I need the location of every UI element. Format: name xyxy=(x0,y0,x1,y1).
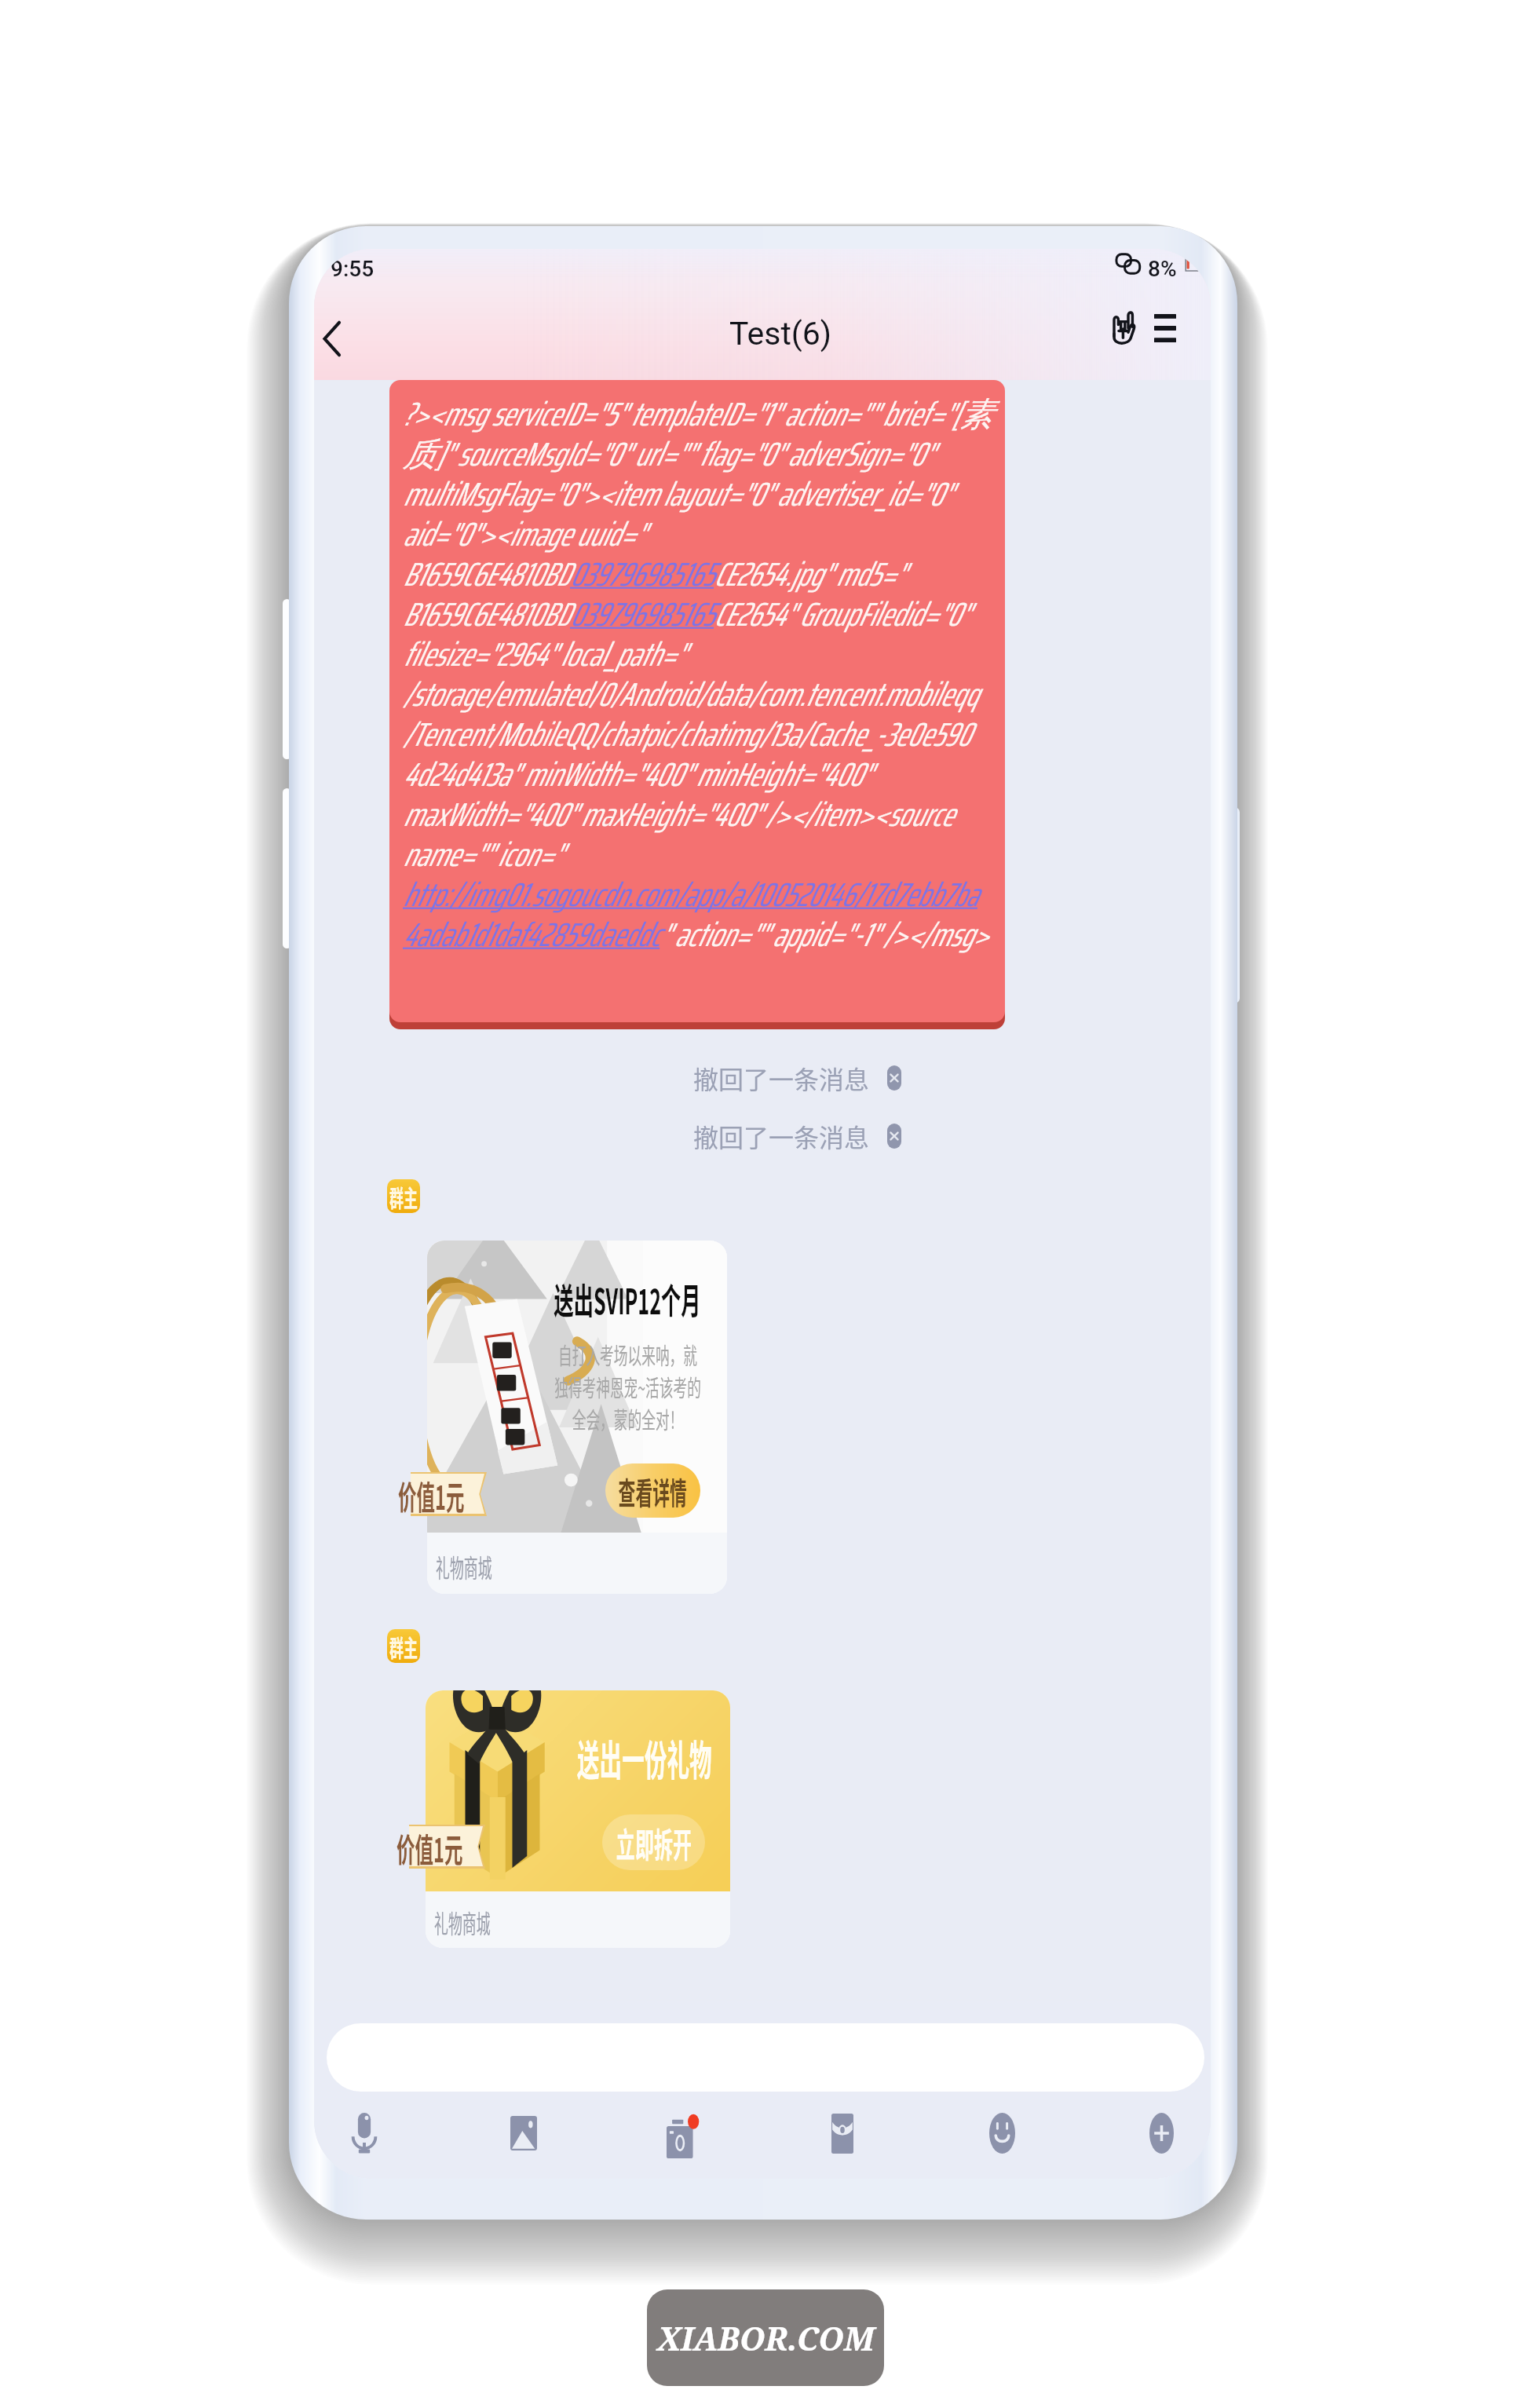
staticText: 9:55 xyxy=(331,256,375,282)
staticText: B1659C6E4810BD xyxy=(403,588,570,640)
staticText: 4adab1d1daf42859daeddc xyxy=(403,908,660,960)
button[interactable]: More xyxy=(1122,2094,1200,2172)
staticText: 送出一份礼物 xyxy=(577,1728,712,1789)
staticText: multiMsgFlag="0"><item layout="0" advert… xyxy=(403,468,952,520)
button[interactable]: Back xyxy=(314,305,364,371)
staticText: aid="0"><image uuid=" xyxy=(403,508,644,560)
staticText: ?><msg serviceID="5" templateID="1" acti… xyxy=(403,388,992,440)
staticText: 查看详情 xyxy=(618,1469,687,1513)
staticText: 8% xyxy=(1148,256,1177,282)
staticText: 039796985165 xyxy=(570,588,714,640)
button[interactable]: 送出一份礼物 xyxy=(426,1690,730,1948)
button[interactable]: Emoji xyxy=(963,2094,1041,2172)
staticText: 质]" sourceMsgId="0" url="" flag="0" adve… xyxy=(403,428,933,480)
staticText: filesize="2964" local_path=" xyxy=(403,628,685,680)
staticText: 撤回了一条消息 xyxy=(693,1060,870,1096)
button[interactable]: Menu xyxy=(1140,303,1190,353)
staticText: XIABOR.COM xyxy=(657,2316,875,2360)
staticText: 价值1元 xyxy=(396,1824,463,1868)
staticText: 撤回了一条消息 xyxy=(693,1118,870,1154)
button[interactable]: 立即拆开 xyxy=(602,1814,705,1870)
staticText: 立即拆开 xyxy=(616,1818,692,1867)
button[interactable]: 送出SVIP12个月 xyxy=(427,1241,727,1594)
staticText: 礼物商城 xyxy=(434,1904,491,1940)
button[interactable]: Camera xyxy=(644,2094,722,2172)
button[interactable]: Red packet xyxy=(803,2094,882,2172)
staticText: Test(6) xyxy=(729,315,832,353)
button[interactable]: Voice message xyxy=(325,2094,404,2172)
staticText: CE2654.jpg" md5=" xyxy=(714,548,904,600)
button[interactable]: Dismiss xyxy=(887,1065,901,1091)
button[interactable]: ?><msg serviceID="5" templateID="1" acti… xyxy=(389,380,1005,1022)
button[interactable]: Dismiss xyxy=(887,1124,901,1149)
staticText: /storage/emulated/0/Android/data/com.ten… xyxy=(403,668,977,720)
staticText: 4d24d413a" minWidth="400" minHeight="400… xyxy=(403,748,871,800)
staticText: 群主 xyxy=(389,1179,418,1213)
staticText: CE2654" GroupFiledid="0" xyxy=(714,588,969,640)
button[interactable]: Photos xyxy=(484,2094,563,2172)
staticText: 礼物商城 xyxy=(436,1548,492,1584)
staticText: 自打入考场以来呐，就 独得考神恩宠~活该考的 全会，蒙的全对！ xyxy=(554,1338,701,1435)
staticText: B1659C6E4810BD xyxy=(403,548,570,600)
staticText: 价值1元 xyxy=(398,1471,464,1515)
staticText: name="" icon=" xyxy=(403,828,562,880)
staticText: http://img01.sogoucdn.com/app/a/10052014… xyxy=(403,868,977,920)
staticText: 送出SVIP12个月 xyxy=(554,1273,701,1325)
button[interactable]: Rock gesture xyxy=(1098,303,1149,353)
button[interactable] xyxy=(327,2023,1204,2092)
staticText: 群主 xyxy=(389,1629,418,1663)
button[interactable]: 查看详情 xyxy=(605,1463,700,1518)
staticText: maxWidth="400" maxHeight="400" /></item>… xyxy=(403,788,953,840)
staticText: 039796985165 xyxy=(570,548,714,600)
staticText: /Tencent/MobileQQ/chatpic/chatimg/13a/Ca… xyxy=(403,708,970,760)
staticText: " action="" appid="-1" /></msg> xyxy=(660,908,988,960)
